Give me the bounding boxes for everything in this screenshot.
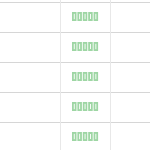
button[interactable]: Value row 4 xyxy=(61,93,110,122)
button[interactable]: Value row 3 xyxy=(61,63,110,92)
button[interactable]: Value row 5 xyxy=(61,123,110,150)
button[interactable]: Value row 1 xyxy=(61,3,110,32)
button[interactable]: Value row 2 xyxy=(61,33,110,62)
